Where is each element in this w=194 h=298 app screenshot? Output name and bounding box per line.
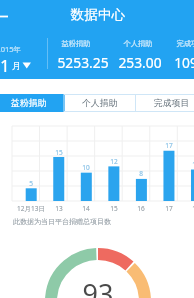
staticText: 12 bbox=[104, 157, 124, 166]
staticText: 12月13日 bbox=[13, 204, 49, 213]
staticText: 17 bbox=[159, 141, 179, 150]
staticText: 13 bbox=[41, 204, 77, 213]
staticText: 数据中心 bbox=[38, 6, 158, 23]
button[interactable]: 益粉捐助 bbox=[0, 94, 65, 112]
staticText: 15 bbox=[96, 204, 132, 213]
staticText: 完成项目 bbox=[161, 39, 194, 48]
staticText: 15 bbox=[49, 148, 69, 157]
staticText: 18 bbox=[178, 204, 194, 213]
button[interactable]: 完成项目 bbox=[136, 94, 194, 112]
staticText: 109 bbox=[156, 53, 194, 72]
staticText: 此数据为当日平台捐赠总项目数 bbox=[13, 217, 123, 226]
staticText: 16 bbox=[123, 204, 159, 213]
staticText: 益粉捐助 bbox=[11, 98, 47, 109]
staticText: 5253.25 bbox=[53, 53, 113, 72]
staticText: 17 bbox=[151, 204, 187, 213]
button[interactable]: 个人捐助 bbox=[64, 94, 136, 112]
button[interactable]: Back bbox=[0, 8, 18, 26]
staticText: 完成项目 bbox=[154, 98, 190, 109]
staticText: 253.00 bbox=[110, 53, 170, 72]
staticText: 1 bbox=[0, 54, 10, 77]
staticText: 月 bbox=[12, 60, 21, 71]
staticText: 10 bbox=[76, 163, 96, 172]
staticText: 个人捐助 bbox=[82, 98, 118, 109]
staticText: 8 bbox=[131, 169, 151, 178]
staticText: 益粉捐助 bbox=[46, 39, 106, 48]
staticText: 5 bbox=[21, 179, 41, 188]
staticText: 个人捐助 bbox=[108, 39, 168, 48]
button[interactable]: Select month bbox=[22, 61, 32, 70]
staticText: 2015年 bbox=[0, 44, 21, 54]
staticText: 11 bbox=[186, 160, 194, 169]
staticText: 93 bbox=[78, 275, 118, 298]
staticText: 14 bbox=[68, 204, 104, 213]
